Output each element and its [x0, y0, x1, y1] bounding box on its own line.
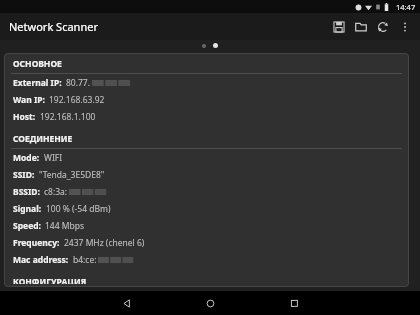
button[interactable]: Refresh — [372, 13, 394, 40]
staticText: External IP: — [13, 77, 62, 89]
button[interactable]: Host: — [4, 108, 409, 125]
button[interactable]: Home — [198, 291, 222, 315]
staticText: BSSID: — [13, 186, 40, 198]
button[interactable]: SSID: — [4, 166, 409, 183]
staticText: b4:ce: — [73, 254, 97, 266]
button[interactable]: Speed: — [4, 217, 409, 234]
staticText: Speed: — [13, 220, 41, 232]
staticText: SSID: — [13, 169, 35, 181]
staticText: 192.168.1.100 — [40, 111, 96, 123]
button[interactable]: More options — [394, 13, 416, 40]
staticText: 144 Mbps — [45, 220, 85, 232]
button[interactable]: Mac address: — [4, 251, 409, 268]
staticText: c8:3a: — [44, 186, 68, 198]
button[interactable]: BSSID: — [4, 183, 409, 200]
staticText: 2437 MHz (chenel 6) — [64, 237, 145, 249]
button[interactable]: External IP: — [4, 74, 409, 91]
button[interactable]: Mode: — [4, 149, 409, 166]
button[interactable]: Wan IP: — [4, 91, 409, 108]
staticText: "Tenda_3E5DE8" — [39, 169, 105, 181]
button[interactable]: Open folder — [350, 13, 372, 40]
button[interactable]: Save — [328, 13, 350, 40]
staticText: Host: — [13, 111, 36, 123]
staticText: 100 % (-54 dBm) — [46, 203, 111, 215]
staticText: Frequency: — [13, 237, 60, 249]
staticText: Mac address: — [13, 254, 69, 266]
staticText: Mode: — [13, 152, 40, 164]
button[interactable]: Frequency: — [4, 234, 409, 251]
staticText: СОЕДИНЕНИЕ — [13, 133, 73, 145]
staticText: 192.168.63.92 — [49, 94, 105, 106]
staticText: Wan IP: — [13, 94, 45, 106]
staticText: Signal: — [13, 203, 42, 215]
button[interactable]: Back — [114, 291, 138, 315]
staticText: Network Scanner — [9, 19, 98, 34]
staticText: 14:47 — [396, 2, 416, 12]
button[interactable]: Recent apps — [282, 291, 306, 315]
staticText: ОСНОВНОЕ — [13, 58, 62, 70]
button[interactable]: Signal: — [4, 200, 409, 217]
staticText: 80.77. — [66, 77, 91, 89]
staticText: WIFI — [44, 152, 63, 164]
staticText: КОНФИГУРАЦИЯ — [13, 276, 87, 284]
